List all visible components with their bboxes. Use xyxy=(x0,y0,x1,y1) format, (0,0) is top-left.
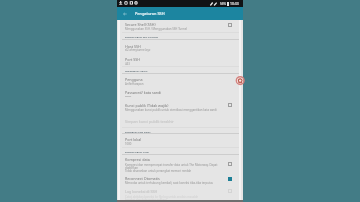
staticText: Port lokal xyxy=(125,137,229,142)
staticText: Password/ kata sandi xyxy=(125,90,229,95)
button[interactable] xyxy=(117,53,243,66)
staticText: 56% xyxy=(220,2,226,6)
button[interactable]: Option disabled xyxy=(225,20,234,29)
staticText: Kompresi data xyxy=(125,157,229,162)
staticText: Kunci publik (Tidak wajib) xyxy=(125,103,229,108)
button[interactable] xyxy=(117,186,243,200)
staticText: •••••• xyxy=(125,95,229,99)
staticText: INFORMASI AKUN xyxy=(125,69,229,72)
button[interactable] xyxy=(117,100,243,114)
staticText: PENGELOLAAN PORT xyxy=(125,130,229,133)
button[interactable] xyxy=(117,134,243,147)
staticText: Pengaturan SSH xyxy=(135,11,165,16)
button[interactable] xyxy=(117,114,243,127)
staticText: Port SSH xyxy=(125,57,229,62)
button[interactable]: Option disabled xyxy=(225,186,234,195)
staticText: 443 xyxy=(125,62,229,66)
staticText: 10:33 xyxy=(230,1,239,6)
staticText: sl2.ohmytunnel.xyz xyxy=(125,48,229,52)
staticText: Reconnect Otomatis xyxy=(125,176,229,181)
staticText: Kompresi dan mempercepat transfer data u… xyxy=(125,163,229,173)
staticText: Simpan kunci publik terakhir xyxy=(125,119,229,124)
staticText: PENGATURAN LAIN xyxy=(125,150,229,153)
staticText: Pengguna xyxy=(125,77,229,82)
button[interactable] xyxy=(117,173,243,187)
button[interactable] xyxy=(117,40,243,53)
staticText: PENGATURAN SSH TUNNEL xyxy=(125,35,229,38)
button[interactable]: Option enabled xyxy=(225,174,234,183)
staticText: Secure Shell (SSH) xyxy=(125,22,229,27)
staticText: Host SSH xyxy=(125,44,229,49)
button[interactable] xyxy=(117,155,243,173)
button[interactable]: Back xyxy=(120,9,130,19)
button[interactable] xyxy=(117,20,243,32)
button[interactable] xyxy=(117,87,243,100)
staticText: Catat aktivitas koneksi ke file log untu… xyxy=(125,195,229,202)
button[interactable]: Option disabled xyxy=(225,159,234,168)
staticText: ArifinHarapan xyxy=(125,82,229,86)
staticText: Mencoba untuk terhubung kembali, saat ko… xyxy=(125,181,229,185)
button[interactable]: Option disabled xyxy=(225,100,234,109)
button[interactable] xyxy=(117,74,243,87)
staticText: Menggunakan kunci publik untuk otentikas… xyxy=(125,108,229,112)
staticText: Menggunakan SSH / Menggunakan SSH Tunnel xyxy=(125,27,229,31)
staticText: 1080 xyxy=(125,142,229,146)
staticText: Log koneksi di SSH xyxy=(125,189,229,194)
